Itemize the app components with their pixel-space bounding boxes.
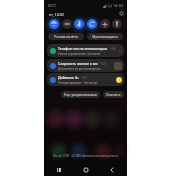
button[interactable]: Телефон так не оптимизиров	[47, 44, 124, 57]
button[interactable]: Упр. уведомлениями	[61, 91, 100, 98]
staticText: Режим полёта	[54, 34, 78, 39]
button[interactable]: Bluetooth	[74, 19, 84, 29]
staticText: МТС	[48, 3, 57, 8]
button[interactable]: Auto rotate	[87, 19, 97, 29]
button[interactable]: Airplane mode	[100, 19, 110, 29]
button[interactable]: Sound	[62, 19, 72, 29]
button[interactable]: Режим полёта	[48, 33, 84, 40]
staticText: Умное управление системой	[58, 52, 101, 56]
button[interactable]: Back	[101, 163, 123, 176]
staticText: · 14:0	[99, 62, 107, 66]
staticText: Мультимедиа и вывод	[87, 34, 123, 39]
button[interactable]: Wi-Fi	[49, 19, 59, 29]
button[interactable]: Мультимедиа и вывод	[87, 33, 123, 40]
staticText: Добавить №	[58, 75, 79, 80]
staticText: Упр. уведомлениями	[64, 93, 97, 97]
staticText: · 14:0	[109, 47, 117, 51]
button[interactable]: Flashlight	[112, 19, 122, 29]
staticText: Дополните за раз развернуть	[58, 67, 102, 71]
staticText: 14:02	[113, 3, 124, 8]
staticText: Рекомендовано · Частично	[58, 81, 98, 85]
staticText: пт, 14:02	[49, 12, 64, 17]
staticText: Телефон так не оптимизиров	[58, 46, 108, 51]
button[interactable]: Добавить №	[47, 73, 124, 86]
staticText: Очистить	[106, 93, 121, 97]
staticText: Сохранить полное и мо	[58, 61, 98, 66]
button[interactable]: Recent apps	[48, 163, 70, 176]
staticText: · 14:0	[80, 76, 88, 80]
button[interactable]: Home	[75, 163, 97, 176]
staticText: Вы из 1700 · 24 000 обновлений материало…	[44, 154, 127, 158]
button[interactable]: Очистить	[103, 91, 124, 98]
button[interactable]: Settings	[119, 11, 124, 16]
button[interactable]: Сохранить полное и мо	[47, 59, 124, 72]
